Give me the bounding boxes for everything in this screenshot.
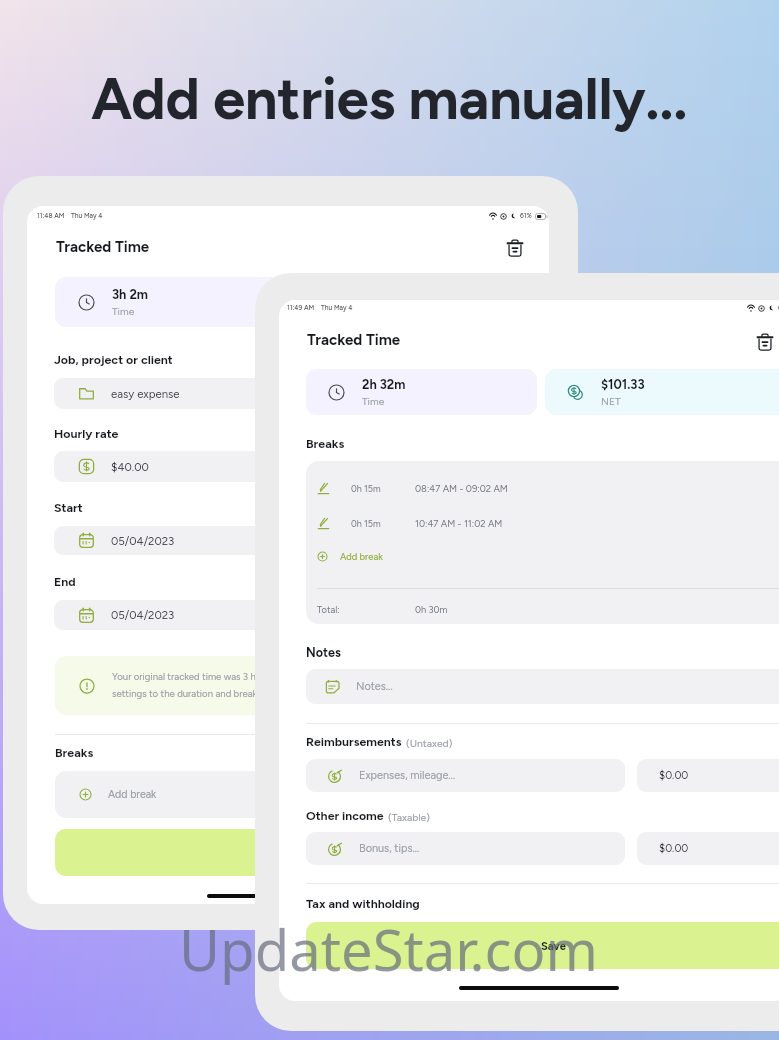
button[interactable]: Add break bbox=[55, 771, 549, 818]
staticText: Add break bbox=[340, 551, 383, 562]
staticText: 61% bbox=[778, 304, 779, 312]
button[interactable]: Delete bbox=[756, 333, 774, 351]
staticText: NET bbox=[601, 395, 621, 407]
staticText: 3h 2m bbox=[112, 287, 149, 302]
button[interactable]: Bonus, tips... bbox=[306, 832, 625, 865]
staticText: (Untaxed) bbox=[406, 737, 453, 749]
button[interactable]: 05/04/2023 bbox=[54, 526, 548, 555]
staticText: UpdateStar.com bbox=[179, 911, 599, 988]
button[interactable]: Add break bbox=[317, 551, 383, 562]
staticText: Notes... bbox=[356, 680, 393, 693]
staticText: (Taxable) bbox=[388, 811, 430, 823]
staticText: End bbox=[54, 574, 76, 589]
button[interactable]: Notes... bbox=[306, 669, 779, 704]
staticText: Tracked Time bbox=[56, 238, 150, 256]
staticText: easy expense bbox=[111, 387, 180, 401]
staticText: settings to the duration and breaks bbox=[112, 688, 262, 700]
staticText: Notes bbox=[306, 645, 341, 660]
staticText: Expenses, mileage... bbox=[359, 769, 456, 782]
staticText: Time bbox=[112, 305, 135, 317]
staticText: $40.00 bbox=[111, 460, 149, 474]
staticText: 10:47 AM - 11:02 AM bbox=[415, 518, 503, 529]
button[interactable]: Save bbox=[306, 922, 779, 969]
button[interactable]: $0.00 bbox=[637, 832, 779, 865]
staticText: Breaks bbox=[55, 745, 94, 760]
button[interactable]: 3h 2m bbox=[55, 277, 549, 327]
staticText: 0h 15m bbox=[351, 518, 415, 529]
staticText: 11:48 AM bbox=[37, 212, 65, 220]
staticText: 11:49 AM bbox=[287, 304, 315, 312]
staticText: $0.00 bbox=[659, 769, 689, 782]
staticText: Add entries manually... bbox=[91, 64, 688, 134]
staticText: 2h 32m bbox=[362, 377, 406, 392]
button[interactable]: 2h 32m bbox=[306, 369, 537, 415]
button[interactable]: 05/04/2023 bbox=[54, 600, 548, 630]
staticText: 05/04/2023 bbox=[111, 608, 175, 622]
button[interactable]: easy expense bbox=[54, 378, 548, 409]
staticText: Thu May 4 bbox=[71, 212, 103, 220]
button[interactable]: $0.00 bbox=[637, 759, 779, 792]
staticText: $101.33 bbox=[601, 377, 645, 392]
button[interactable]: Expenses, mileage... bbox=[306, 759, 625, 792]
staticText: $0.00 bbox=[659, 842, 689, 855]
staticText: Add break bbox=[108, 788, 157, 801]
staticText: Save bbox=[541, 939, 566, 952]
staticText: Bonus, tips... bbox=[359, 842, 420, 855]
staticText: Time bbox=[362, 395, 385, 407]
button[interactable]: $40.00 bbox=[54, 451, 548, 482]
staticText: Tax and withholding bbox=[306, 896, 420, 911]
staticText: Your original tracked time was 3 ho bbox=[112, 671, 262, 683]
staticText: 0h 30m bbox=[415, 604, 448, 615]
staticText: Job, project or client bbox=[54, 352, 173, 367]
staticText: Total: bbox=[317, 604, 415, 615]
staticText: Reimbursements bbox=[306, 734, 402, 749]
staticText: Start bbox=[54, 500, 83, 515]
staticText: Other income bbox=[306, 808, 384, 823]
staticText: Thu May 4 bbox=[321, 304, 353, 312]
staticText: 05/04/2023 bbox=[111, 534, 175, 548]
staticText: Hourly rate bbox=[54, 426, 119, 441]
button[interactable] bbox=[55, 829, 549, 876]
staticText: 0h 15m bbox=[351, 483, 415, 494]
staticText: Breaks bbox=[306, 436, 345, 451]
button[interactable]: Delete bbox=[506, 239, 524, 257]
staticText: 61% bbox=[520, 212, 532, 220]
staticText: 08:47 AM - 09:02 AM bbox=[415, 483, 508, 494]
staticText: Tracked Time bbox=[307, 331, 401, 349]
button[interactable]: $101.33 bbox=[545, 369, 779, 415]
